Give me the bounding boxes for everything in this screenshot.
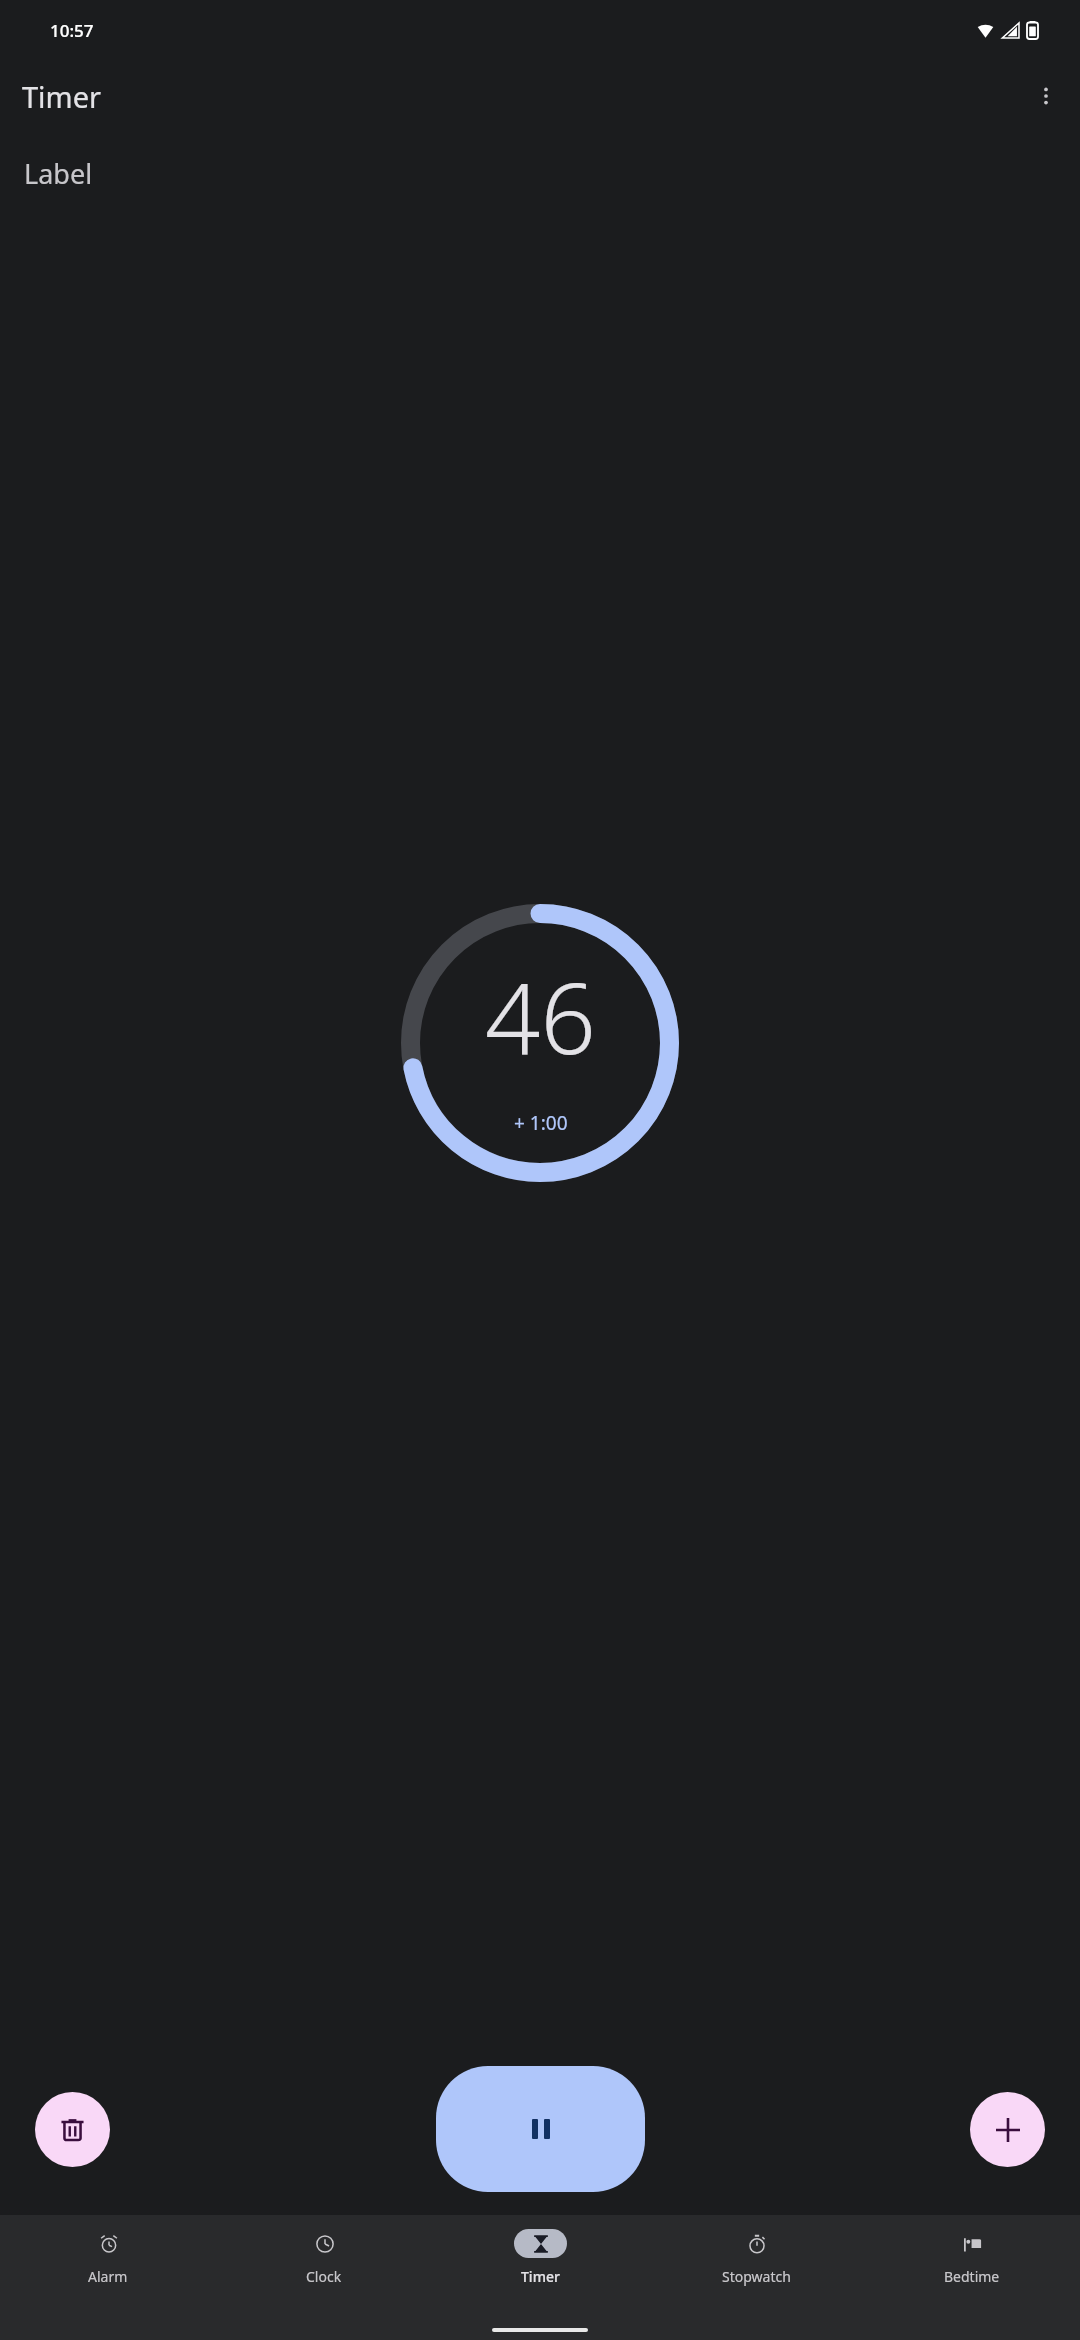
staticText: Stopwatch <box>722 2267 791 2286</box>
staticText: Alarm <box>88 2267 128 2286</box>
button[interactable]: Clock <box>216 2223 432 2340</box>
staticText: Bedtime <box>944 2267 1000 2286</box>
button[interactable]: Stopwatch <box>648 2223 864 2340</box>
button[interactable]: Alarm <box>0 2223 216 2340</box>
staticText: 46 <box>485 950 596 1082</box>
staticText: Timer <box>22 77 102 116</box>
button[interactable]: Timer <box>432 2223 648 2340</box>
button[interactable]: Delete timer <box>35 2092 110 2167</box>
button[interactable]: Pause <box>436 2066 645 2192</box>
button[interactable]: 46 <box>401 904 679 1182</box>
staticText: 10:57 <box>50 19 94 42</box>
staticText: Clock <box>306 2267 342 2286</box>
staticText: + 1:00 <box>514 1110 568 1136</box>
button[interactable]: More options <box>1022 72 1070 120</box>
staticText: Label <box>24 155 93 192</box>
button[interactable]: Label <box>0 150 1080 196</box>
staticText: Timer <box>521 2267 560 2286</box>
button[interactable]: Add one minute <box>970 2092 1045 2167</box>
button[interactable]: Bedtime <box>864 2223 1080 2340</box>
